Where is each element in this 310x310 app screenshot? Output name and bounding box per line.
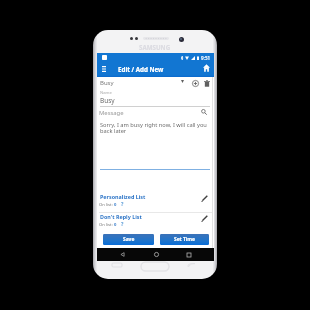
staticText: 9:51 — [201, 55, 211, 61]
button[interactable]: Save — [103, 234, 154, 245]
staticText: Personalized List — [100, 193, 146, 200]
staticText: ? — [121, 201, 124, 208]
staticText: Sorry, I am busy right now, I will call … — [100, 121, 208, 135]
staticText: ? — [121, 221, 124, 228]
staticText: Edit / Add New — [118, 65, 164, 73]
button[interactable]: Recent apps — [182, 248, 196, 261]
staticText: Busy — [100, 79, 114, 87]
staticText: Message — [99, 109, 124, 117]
staticText: SAMSUNG — [139, 43, 171, 51]
staticText: Name — [100, 90, 112, 96]
staticText: Set Time — [174, 236, 195, 243]
button[interactable]: Home — [149, 248, 163, 261]
button[interactable]: Delete profile — [202, 78, 212, 88]
button[interactable]: Edit list — [199, 193, 209, 203]
button[interactable]: Back — [115, 248, 129, 261]
button[interactable]: Add new profile — [190, 78, 200, 88]
button[interactable]: Edit list — [199, 213, 209, 223]
button[interactable]: Don't Reply List — [97, 213, 214, 231]
button[interactable]: Open navigation menu — [97, 62, 111, 76]
staticText: On list: — [99, 222, 113, 228]
staticText: 0 — [114, 222, 117, 228]
staticText: Busy — [100, 96, 115, 105]
button[interactable]: Set Time — [160, 234, 209, 245]
button[interactable]: Help — [119, 201, 126, 208]
button[interactable]: Personalized List — [97, 193, 214, 211]
button[interactable]: Home — [199, 61, 213, 75]
staticText: Save — [123, 236, 135, 243]
staticText: 0 — [114, 202, 117, 208]
button[interactable]: Search message — [199, 107, 209, 117]
staticText: On list: — [99, 202, 113, 208]
button[interactable]: Select profile — [169, 77, 193, 89]
staticText: Don't Reply List — [100, 213, 142, 220]
button[interactable]: Help — [119, 221, 126, 228]
